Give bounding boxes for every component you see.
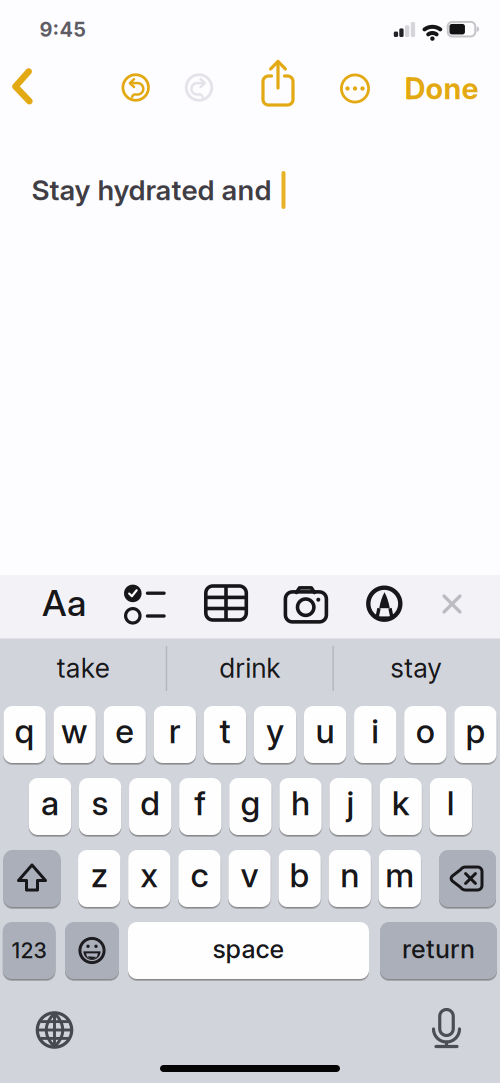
button[interactable]: space: [128, 922, 369, 979]
staticText: 123: [12, 938, 47, 963]
staticText: i: [371, 711, 379, 751]
staticText: t: [219, 711, 230, 751]
button[interactable]: x: [128, 850, 170, 907]
button[interactable]: take: [3, 641, 163, 695]
staticText: q: [15, 711, 35, 751]
button[interactable]: z: [78, 850, 120, 907]
button[interactable]: a: [29, 778, 71, 835]
button[interactable]: l: [430, 778, 472, 835]
button[interactable]: y: [254, 706, 296, 763]
staticText: e: [115, 711, 134, 751]
staticText: Done: [404, 71, 478, 106]
button[interactable]: u: [304, 706, 346, 763]
staticText: z: [91, 855, 108, 895]
button[interactable]: Undo: [119, 70, 153, 104]
button[interactable]: v: [228, 850, 271, 907]
staticText: f: [194, 783, 206, 823]
button[interactable]: r: [154, 706, 196, 763]
staticText: b: [290, 855, 310, 895]
staticText: u: [316, 711, 335, 751]
staticText: Stay hydrated and: [31, 173, 271, 206]
button[interactable]: b: [278, 850, 321, 907]
button[interactable]: n: [329, 850, 371, 907]
button[interactable]: e: [104, 706, 146, 763]
staticText: y: [266, 711, 284, 751]
button[interactable]: d: [129, 778, 171, 835]
button[interactable]: Camera: [283, 583, 329, 623]
button[interactable]: c: [178, 850, 220, 907]
staticText: l: [447, 783, 455, 823]
button[interactable]: Done: [404, 71, 478, 106]
button[interactable]: o: [404, 706, 446, 763]
staticText: n: [340, 855, 359, 895]
staticText: k: [392, 783, 410, 823]
button[interactable]: 123: [3, 922, 55, 979]
button[interactable]: Dictation: [431, 1008, 461, 1048]
button[interactable]: w: [53, 706, 96, 763]
staticText: m: [385, 855, 414, 895]
button[interactable]: Format: [42, 582, 86, 624]
staticText: c: [190, 855, 208, 895]
staticText: w: [61, 711, 88, 751]
button[interactable]: t: [204, 706, 246, 763]
button[interactable]: g: [229, 778, 271, 835]
staticText: r: [169, 711, 181, 751]
button[interactable]: q: [3, 706, 46, 763]
button[interactable]: stay: [336, 641, 496, 695]
button[interactable]: Table: [204, 583, 248, 623]
button[interactable]: j: [329, 778, 372, 835]
button[interactable]: drink: [170, 641, 330, 695]
staticText: return: [402, 934, 475, 964]
staticText: s: [92, 783, 109, 823]
staticText: g: [240, 783, 260, 823]
staticText: o: [416, 711, 435, 751]
staticText: j: [347, 783, 355, 823]
staticText: d: [140, 783, 160, 823]
button[interactable]: Shift: [3, 850, 60, 907]
staticText: v: [240, 855, 258, 895]
button[interactable]: Share: [258, 56, 298, 112]
staticText: 9:45: [39, 18, 85, 41]
staticText: stay: [390, 652, 442, 684]
button[interactable]: More: [338, 71, 372, 105]
staticText: take: [57, 652, 110, 684]
staticText: Aa: [42, 582, 86, 624]
button[interactable]: Back: [4, 66, 40, 107]
button[interactable]: Dismiss keyboard: [441, 593, 462, 614]
button[interactable]: Checklist: [122, 582, 166, 626]
button[interactable]: f: [179, 778, 221, 835]
button[interactable]: Next keyboard: [35, 1011, 73, 1049]
staticText: drink: [219, 652, 280, 684]
staticText: x: [140, 855, 158, 895]
staticText: p: [465, 711, 485, 751]
button[interactable]: Markup: [364, 584, 404, 624]
button[interactable]: k: [380, 778, 422, 835]
staticText: a: [41, 783, 59, 823]
button[interactable]: p: [454, 706, 496, 763]
button[interactable]: i: [354, 706, 396, 763]
staticText: h: [291, 783, 310, 823]
button[interactable]: Emoji: [65, 922, 119, 979]
button[interactable]: Redo: [182, 70, 216, 104]
button[interactable]: return: [380, 922, 497, 979]
button[interactable]: Delete: [439, 850, 496, 907]
button[interactable]: m: [379, 850, 421, 907]
button[interactable]: h: [279, 778, 322, 835]
staticText: space: [212, 934, 284, 964]
button[interactable]: s: [79, 778, 121, 835]
